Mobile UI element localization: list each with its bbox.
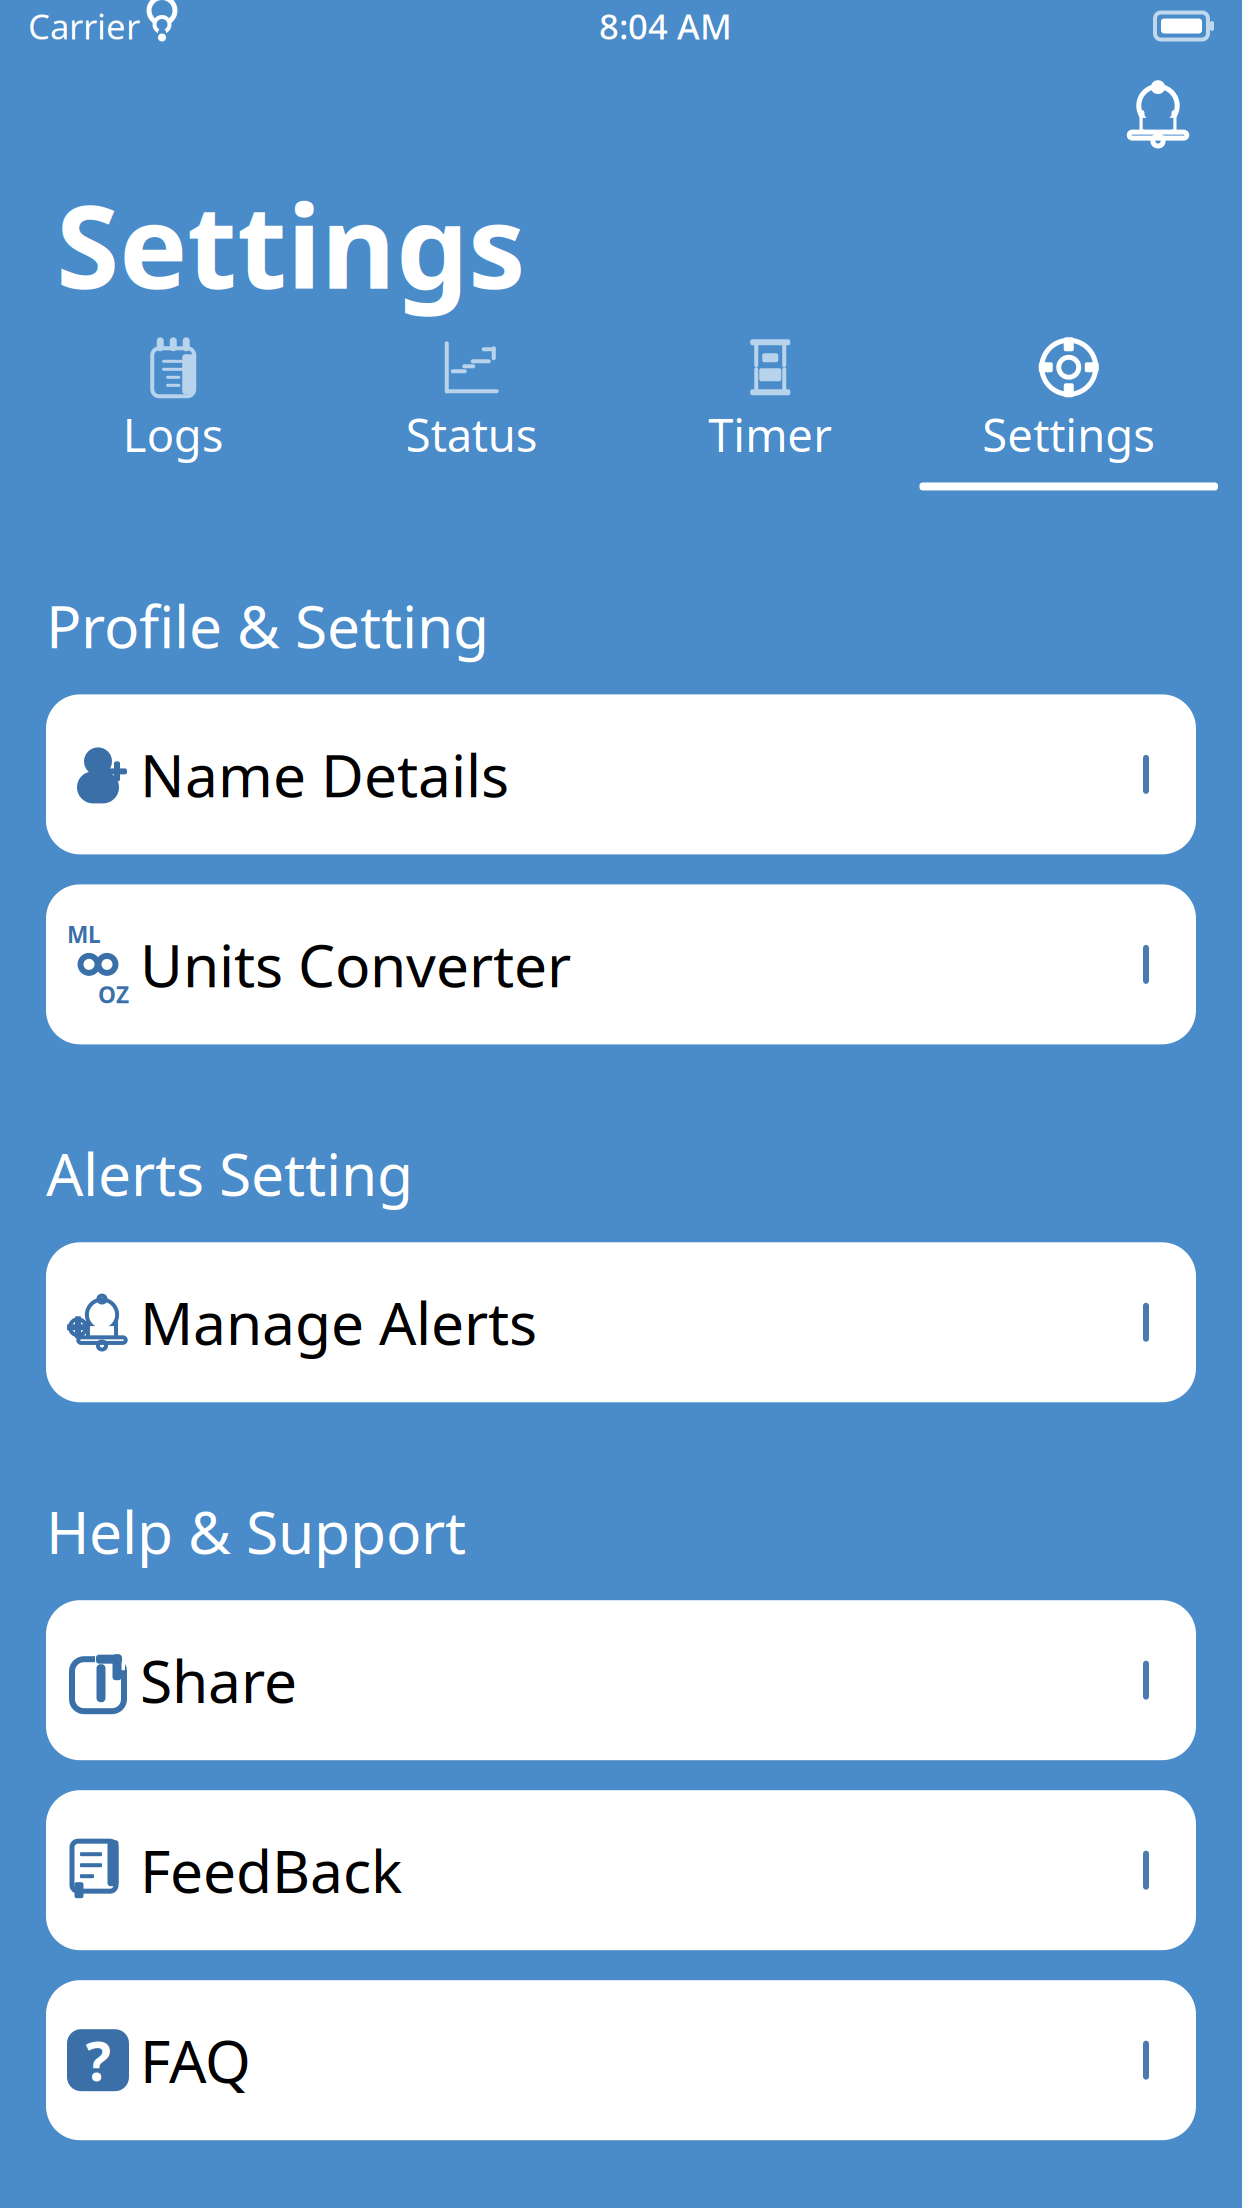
staticText: OZ	[98, 979, 129, 1009]
staticText: Logs	[123, 404, 224, 464]
staticText: Settings	[982, 404, 1155, 464]
staticText: Share	[140, 1641, 297, 1719]
staticText: ML	[67, 919, 101, 949]
staticText: Name Details	[140, 735, 509, 813]
staticText: Settings	[56, 168, 526, 320]
staticText: Units Converter	[140, 925, 571, 1003]
button[interactable]: Timer	[621, 336, 919, 490]
button[interactable]: ML	[46, 884, 1196, 1044]
button[interactable]: Logs	[24, 336, 322, 490]
staticText: Manage Alerts	[140, 1283, 537, 1361]
button[interactable]: FeedBack	[46, 1790, 1196, 1950]
button[interactable]: Share	[46, 1600, 1196, 1760]
staticText: Timer	[708, 404, 832, 464]
button[interactable]: Manage Alerts	[46, 1242, 1196, 1402]
staticText: Help & Support	[46, 1492, 466, 1570]
staticText: Carrier	[28, 3, 140, 49]
staticText: Alerts Setting	[46, 1134, 413, 1212]
button[interactable]: ?	[46, 1980, 1196, 2140]
staticText: FAQ	[140, 2021, 251, 2099]
button[interactable]: Status	[322, 336, 621, 490]
staticText: ?	[85, 2025, 110, 2096]
staticText: Profile & Setting	[46, 586, 489, 664]
staticText: 8:04 AM	[599, 3, 732, 49]
button[interactable]: Settings	[919, 336, 1218, 490]
staticText: Status	[406, 404, 538, 464]
button[interactable]: Notifications	[1104, 74, 1212, 154]
button[interactable]: Name Details	[46, 694, 1196, 854]
staticText: FeedBack	[140, 1831, 402, 1909]
